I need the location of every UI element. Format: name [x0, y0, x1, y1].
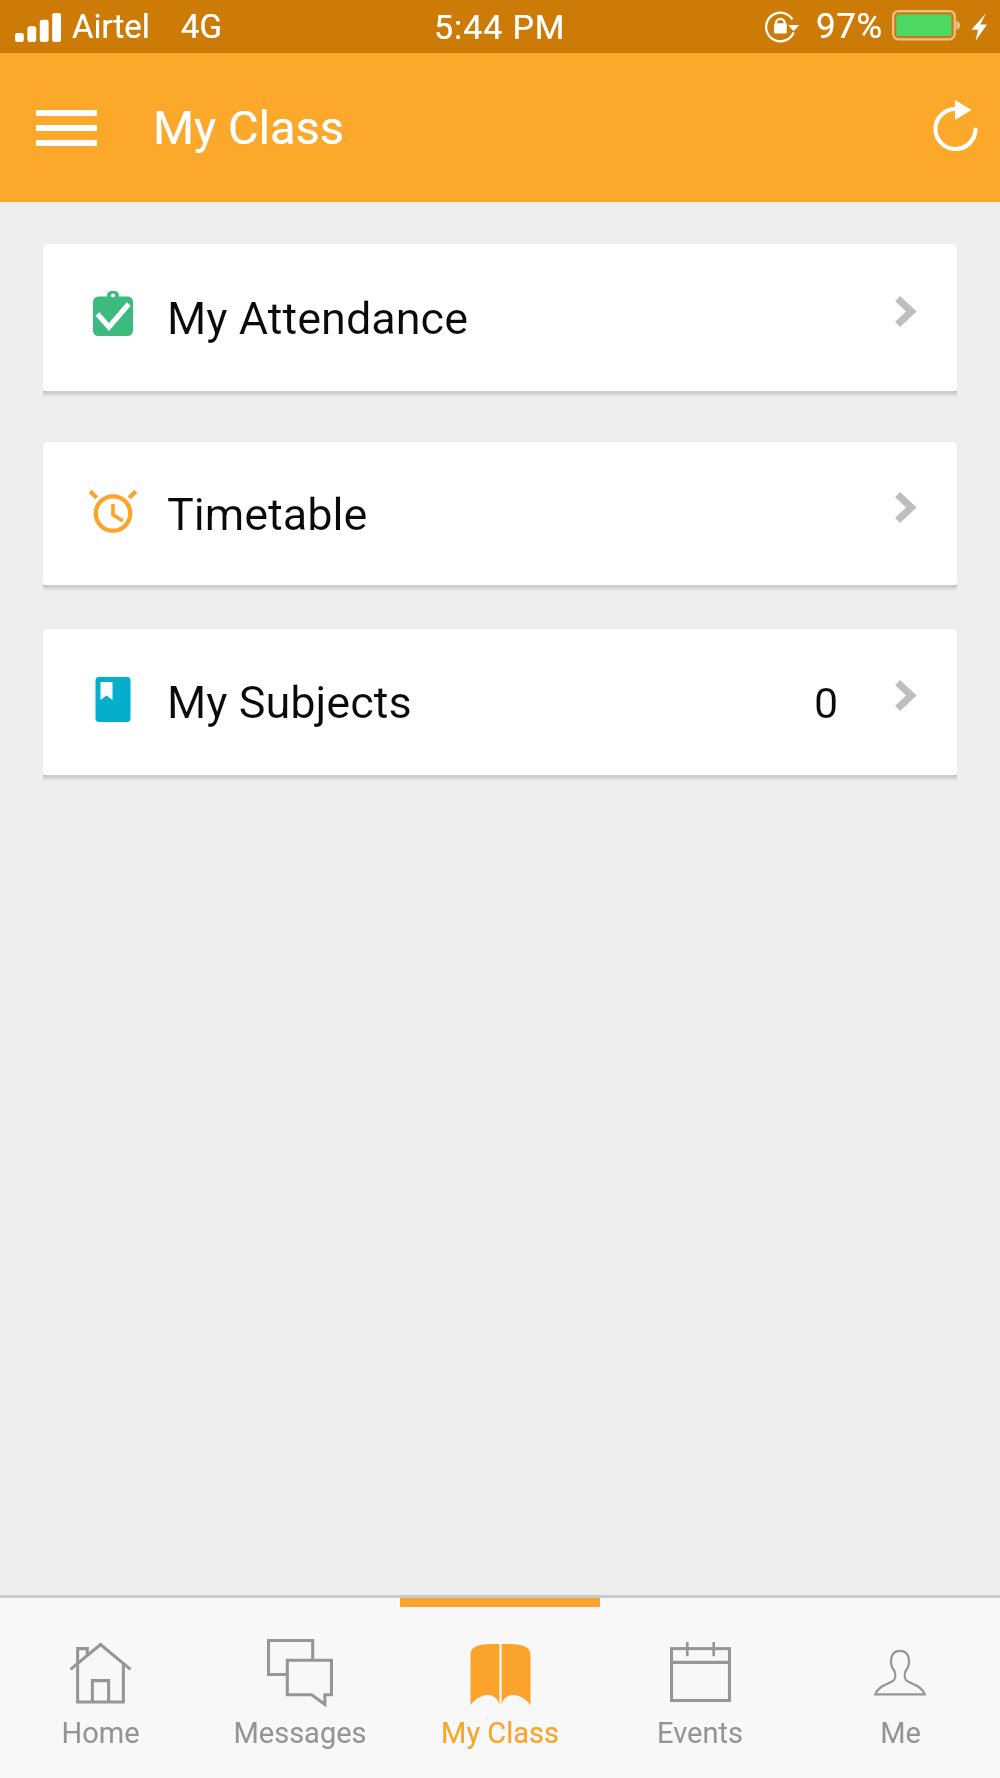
staticText: 0 [814, 678, 839, 728]
button[interactable]: Timetable [43, 442, 957, 586]
button[interactable]: My Attendance [43, 244, 957, 392]
staticText: 5:44 PM [434, 7, 566, 47]
staticText: Messages [233, 1716, 367, 1750]
staticText: My Attendance [167, 292, 469, 345]
button[interactable]: Messages [200, 1598, 400, 1778]
staticText: My Class [153, 100, 345, 155]
staticText: 97% [816, 6, 883, 47]
button[interactable]: My Subjects [43, 629, 957, 776]
button[interactable]: Me [800, 1598, 1000, 1778]
button[interactable]: Refresh [890, 73, 1000, 183]
button[interactable]: My Class [400, 1598, 600, 1778]
button[interactable]: Home [0, 1598, 200, 1778]
staticText: Airtel [72, 7, 150, 46]
staticText: Me [880, 1716, 921, 1750]
staticText: Events [657, 1716, 743, 1750]
button[interactable]: Events [600, 1598, 800, 1778]
staticText: Timetable [167, 488, 368, 541]
staticText: My Class [441, 1716, 559, 1750]
button[interactable]: Menu [0, 73, 133, 183]
staticText: My Subjects [167, 676, 412, 729]
staticText: Home [61, 1716, 140, 1750]
staticText: 4G [181, 7, 223, 46]
